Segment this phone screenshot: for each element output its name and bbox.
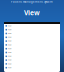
staticText: Row <box>8 29 11 31</box>
staticText: Row <box>8 25 11 27</box>
staticText: View <box>24 8 40 17</box>
staticText: Patient Management System <box>11 0 53 3</box>
staticText: Row <box>8 40 11 42</box>
staticText: Row <box>8 67 11 69</box>
staticText: Row <box>8 59 11 61</box>
staticText: Row <box>8 36 11 38</box>
staticText: Row <box>8 33 11 34</box>
staticText: Row <box>8 44 11 46</box>
staticText: Row <box>8 63 11 65</box>
staticText: Row <box>8 48 11 50</box>
staticText: Row <box>8 52 11 53</box>
staticText: Row <box>8 55 11 57</box>
